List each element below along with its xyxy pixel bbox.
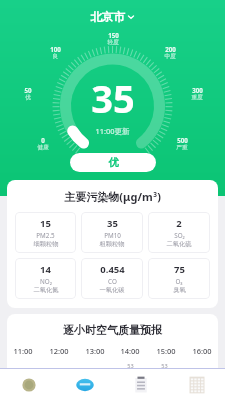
staticText: 50	[24, 86, 32, 94]
staticText: CO	[108, 277, 117, 286]
staticText: 300	[192, 86, 203, 94]
staticText: 11:00更新	[95, 126, 130, 136]
staticText: 0.454	[100, 263, 125, 276]
staticText: 0	[41, 136, 45, 144]
staticText: NO₂	[40, 277, 52, 286]
button[interactable]: Report	[113, 369, 169, 400]
staticText: 一氧化碳	[99, 286, 125, 294]
staticText: 2	[176, 217, 182, 230]
staticText: 逐小时空气质量预报	[63, 323, 162, 337]
staticText: 12:00	[49, 346, 69, 356]
staticText: 主要污染物(μg/m	[64, 189, 153, 204]
button[interactable]: 14	[15, 258, 76, 299]
staticText: 15:00	[156, 346, 176, 356]
button[interactable]: 北京市	[0, 6, 225, 28]
staticText: 53	[127, 362, 134, 370]
staticText: 14	[40, 263, 51, 276]
staticText: 15	[40, 217, 51, 230]
staticText: 35	[91, 72, 135, 124]
staticText: 16:00	[192, 346, 212, 356]
staticText: 重度	[191, 94, 203, 101]
staticText: 500	[177, 136, 188, 144]
button[interactable]: Sun	[0, 369, 57, 400]
staticText: )	[157, 189, 161, 204]
staticText: 二氧化硫	[166, 240, 192, 248]
staticText: 13:00	[85, 346, 105, 356]
staticText: 14:00	[120, 346, 140, 356]
staticText: 严重	[176, 144, 188, 151]
staticText: 优	[108, 156, 119, 169]
staticText: 轻度	[107, 39, 119, 46]
button[interactable]: Air quality	[57, 369, 113, 400]
staticText: 11:00	[13, 346, 33, 356]
staticText: SO₂	[174, 231, 185, 240]
staticText: 细颗粒物	[33, 240, 59, 248]
staticText: 健康	[37, 144, 49, 151]
staticText: 中度	[164, 53, 176, 60]
button[interactable]: 15	[15, 212, 76, 253]
staticText: PM2.5	[36, 231, 55, 240]
staticText: 优	[25, 94, 31, 101]
staticText: 75	[174, 263, 185, 276]
staticText: PM10	[104, 231, 121, 240]
button[interactable]: Grid	[169, 369, 225, 400]
button[interactable]: 35	[81, 212, 143, 253]
button[interactable]: 0.454	[81, 258, 143, 299]
staticText: 100	[50, 45, 61, 53]
button[interactable]: 75	[148, 258, 210, 299]
staticText: 53	[161, 362, 168, 370]
staticText: 二氧化氮	[33, 286, 59, 294]
staticText: 良	[52, 53, 58, 60]
staticText: 150	[108, 31, 119, 39]
staticText: 北京市	[90, 10, 125, 24]
staticText: 35	[107, 217, 118, 230]
staticText: 粗颗粒物	[99, 240, 125, 248]
button[interactable]: 优	[70, 153, 156, 172]
staticText: 3	[153, 190, 157, 199]
staticText: O₃	[175, 277, 183, 286]
button[interactable]: 2	[148, 212, 210, 253]
staticText: 200	[165, 45, 176, 53]
staticText: 臭氧	[173, 286, 186, 294]
